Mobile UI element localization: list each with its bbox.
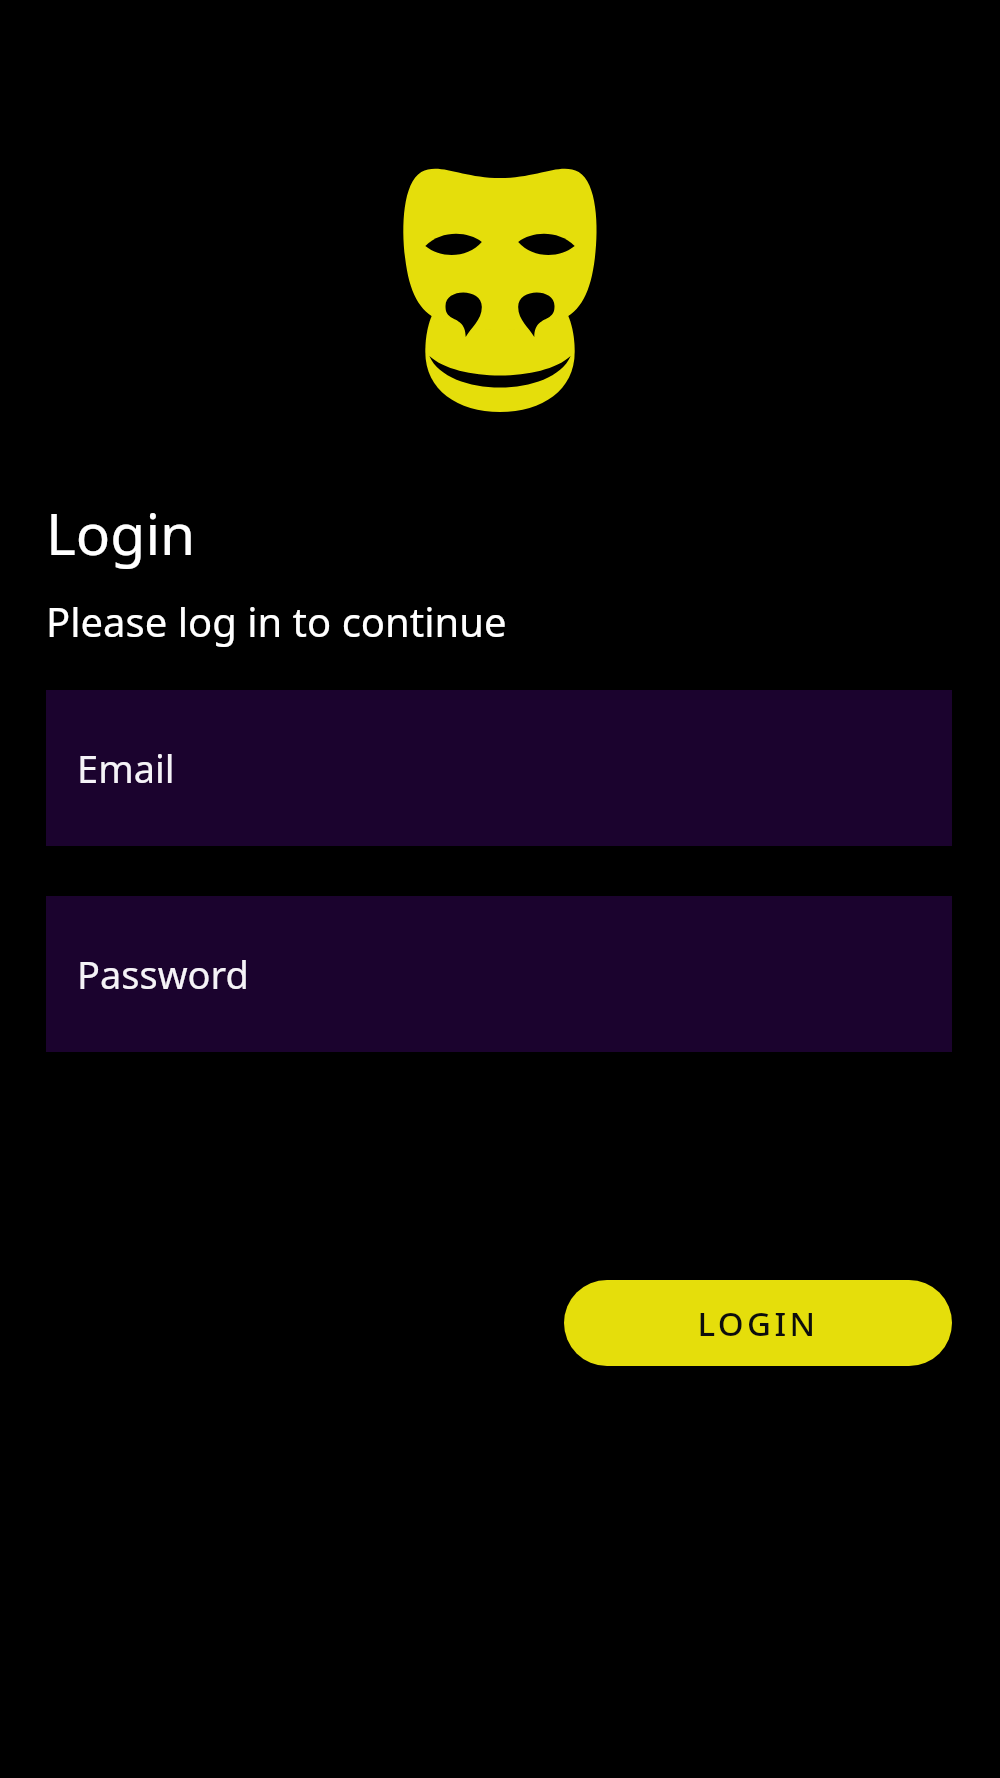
staticText: Email — [77, 742, 175, 794]
other: App logo — [391, 160, 609, 412]
button[interactable]: LOGIN — [564, 1280, 952, 1366]
staticText: Please log in to continue — [46, 594, 507, 648]
staticText: LOGIN — [697, 1301, 819, 1346]
staticText: Password — [77, 948, 249, 1000]
button[interactable]: Email — [46, 690, 952, 846]
button[interactable]: Password — [46, 896, 952, 1052]
staticText: Login — [46, 494, 196, 572]
